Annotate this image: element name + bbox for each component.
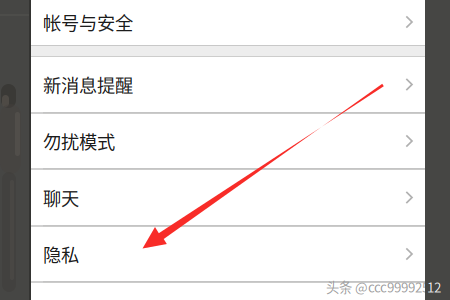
staticText: 隐私: [43, 241, 79, 267]
staticText: 头条 @ccc99992512: [326, 277, 443, 296]
button[interactable]: 勿扰模式: [31, 113, 425, 168]
staticText: 12: [427, 277, 441, 296]
button[interactable]: 隐私: [31, 226, 425, 281]
button[interactable]: 新消息提醒: [31, 56, 425, 112]
button[interactable]: 聊天: [31, 169, 425, 225]
staticText: 帐号与安全: [43, 9, 133, 35]
staticText: 勿扰模式: [43, 128, 115, 154]
staticText: 新消息提醒: [43, 71, 133, 98]
staticText: 聊天: [43, 184, 79, 211]
button[interactable]: 帐号与安全: [31, 0, 425, 45]
